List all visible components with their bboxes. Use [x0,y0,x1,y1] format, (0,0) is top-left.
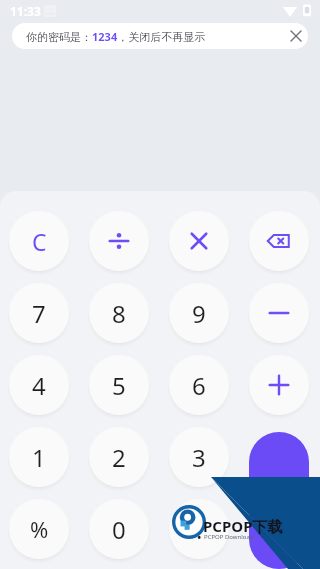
staticText: PCPOP Download [204,533,254,541]
button[interactable]: 你的密码是：1234，关闭后不再显示 [12,23,308,49]
staticText: 7 [32,297,46,330]
staticText: 2 [112,441,126,474]
button[interactable]: 2 [89,427,149,487]
staticText: 6 [192,369,206,402]
button[interactable]: 减 [249,283,309,343]
button[interactable]: 6 [169,355,229,415]
staticText: 11:33 [10,3,41,19]
button[interactable]: 9 [169,283,229,343]
button[interactable]: 3 [169,427,229,487]
button[interactable]: 5 [89,355,149,415]
button[interactable]: 除 [89,211,149,271]
button[interactable]: . [169,499,229,559]
button[interactable]: % [9,499,69,559]
staticText: 9 [192,297,206,330]
staticText: C [32,226,47,257]
staticText: 你的密码是：1234，关闭后不再显示 [26,29,206,44]
button[interactable]: C [9,211,69,271]
staticText: 5 [112,369,126,402]
button[interactable]: 4 [9,355,69,415]
button[interactable]: 7 [9,283,69,343]
staticText: PCPOP下载 [203,516,283,536]
button[interactable]: 加 [249,355,309,415]
staticText: 3 [192,441,206,474]
staticText: % [30,514,49,544]
staticText: 8 [112,297,126,330]
staticText: 1 [32,441,46,474]
button[interactable]: 退格 [249,211,309,271]
button[interactable]: 8 [89,283,149,343]
staticText: . [196,513,203,546]
staticText: 4 [32,369,46,402]
staticText: 0 [112,513,126,546]
button[interactable]: 1 [9,427,69,487]
button[interactable]: 关闭 [284,23,308,49]
button[interactable]: 0 [89,499,149,559]
button[interactable]: 乘 [169,211,229,271]
button[interactable]: 等于 [249,432,309,569]
